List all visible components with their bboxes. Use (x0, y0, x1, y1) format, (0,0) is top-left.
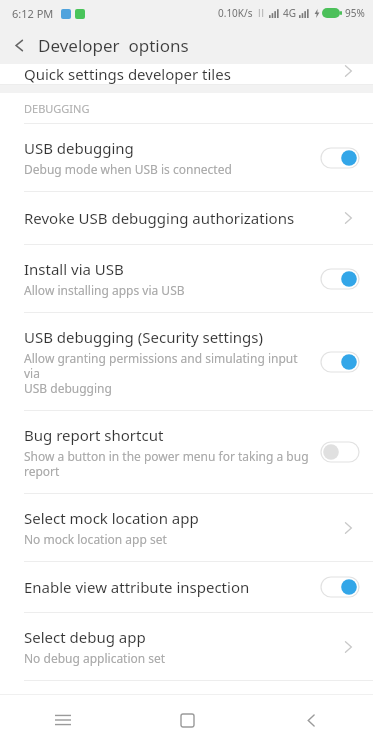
button[interactable]: Quick settings developer tiles (0, 64, 373, 84)
staticText: No debug application set (24, 650, 166, 666)
button[interactable]: Back (0, 26, 38, 64)
button[interactable]: USB debugging (Security settings) (0, 313, 373, 410)
button[interactable]: Home (125, 695, 249, 745)
button[interactable]: Menu (0, 695, 125, 745)
staticText: Allow installing apps via USB (24, 282, 185, 298)
staticText: Show a button in the power menu for taki… (24, 448, 309, 479)
staticText: Debug mode when USB is connected (24, 161, 232, 177)
staticText: Revoke USB debugging authorizations (24, 208, 295, 228)
button[interactable]: Back (249, 695, 373, 745)
button[interactable]: Install via USB (0, 245, 373, 312)
button[interactable]: Revoke USB debugging authorizations (0, 192, 373, 244)
staticText: Select debug app (24, 627, 146, 647)
staticText: Allow granting permissions and simulatin… (24, 350, 311, 396)
button[interactable]: Enable view attribute inspection (0, 562, 373, 612)
button[interactable]: Select mock location app (0, 494, 373, 561)
staticText: 6:12 PM (12, 6, 54, 21)
staticText: 4G (283, 6, 296, 20)
button[interactable]: USB debugging (0, 124, 373, 191)
staticText: Select mock location app (24, 508, 199, 528)
staticText: Developer options (38, 34, 189, 57)
staticText: 95% (345, 6, 365, 20)
staticText: DEBUGGING (24, 101, 90, 116)
button[interactable]: Bug report shortcut (0, 411, 373, 493)
button[interactable]: Select debug app (0, 613, 373, 680)
staticText: Bug report shortcut (24, 425, 164, 445)
staticText: Install via USB (24, 259, 124, 279)
staticText: USB debugging (Security settings) (24, 327, 263, 347)
staticText: No mock location app set (24, 531, 167, 547)
staticText: USB debugging (24, 138, 134, 158)
staticText: Quick settings developer tiles (24, 64, 231, 84)
staticText: 0.10K/s (218, 6, 253, 20)
staticText: Enable view attribute inspection (24, 577, 250, 597)
